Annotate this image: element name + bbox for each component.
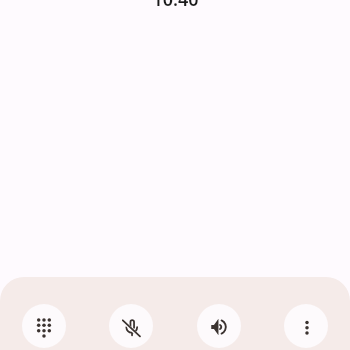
button[interactable]: Dialpad — [22, 304, 66, 348]
button[interactable]: Mute microphone — [109, 304, 153, 348]
button[interactable]: More options — [284, 304, 328, 348]
staticText: 10:40 — [152, 0, 199, 12]
button[interactable]: Speaker volume — [197, 304, 241, 348]
